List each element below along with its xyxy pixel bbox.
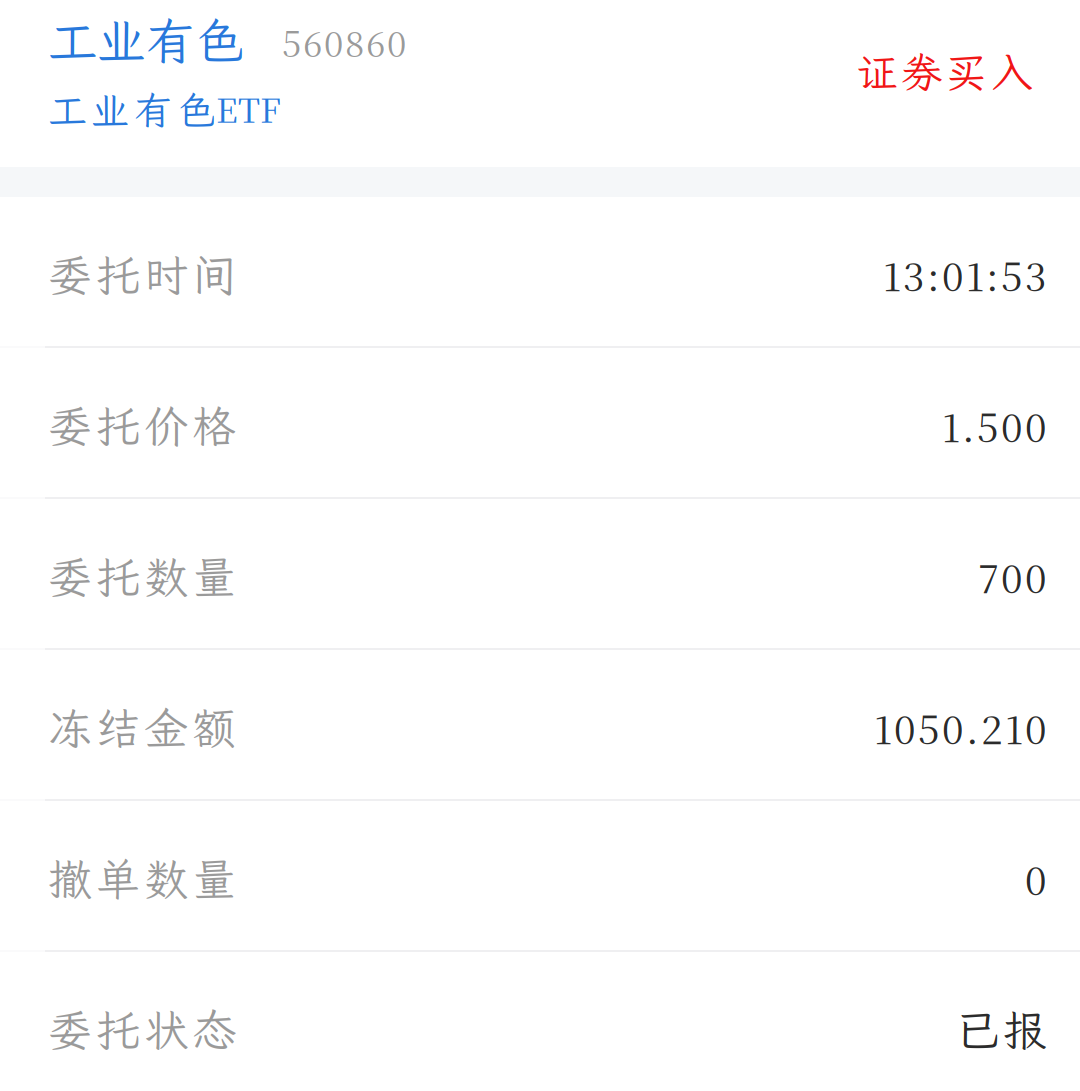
button[interactable]: 委托时间 13:01:53 [0, 197, 1080, 346]
staticText: 委 托 数 量 [48, 547, 236, 605]
staticText: 工 业 有 色ETF [48, 85, 281, 135]
staticText: 委 托 价 格 [48, 396, 236, 454]
button[interactable]: 证 券 买 入 [0, 44, 1032, 98]
staticText: 7 0 0 [978, 549, 1047, 604]
staticText: 证 券 买 入 [856, 44, 1032, 98]
staticText: 委 托 状 态 [48, 1000, 236, 1058]
staticText: 撤 单 数 量 [48, 849, 236, 907]
staticText: 1 0 5 0 . 2 1 0 [874, 700, 1047, 755]
staticText: 0 [1025, 851, 1047, 906]
staticText: 5 6 0 8 6 0 [282, 17, 406, 67]
button[interactable]: 委托状态 已报 [0, 952, 1080, 1091]
staticText: 1 3 : 0 1 : 5 3 [883, 247, 1047, 302]
button[interactable]: 冻结金额 1050.210 [0, 650, 1080, 799]
button[interactable]: 委托价格 1.500 [0, 348, 1080, 497]
staticText: 委 托 时 间 [48, 245, 236, 303]
staticText: 工业有色 [48, 8, 244, 73]
button[interactable]: 撤单数量 0 [0, 801, 1080, 950]
staticText: 1 . 5 0 0 [942, 398, 1047, 453]
button[interactable]: 委托数量 700 [0, 499, 1080, 648]
staticText: 冻 结 金 额 [48, 698, 236, 756]
staticText: 已 报 [955, 1000, 1047, 1058]
